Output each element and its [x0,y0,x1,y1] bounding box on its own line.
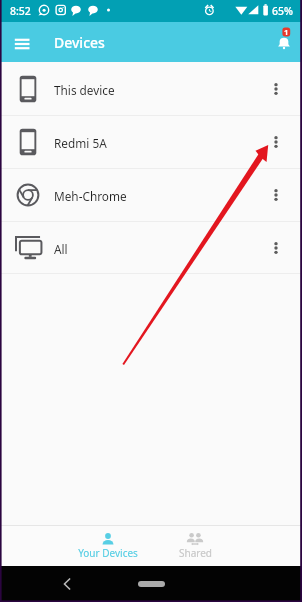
button[interactable]: Your Devices [64,526,152,566]
staticText: 8:52 [10,4,31,18]
button[interactable]: Notifications [258,22,302,62]
staticText: Your Devices [78,546,138,560]
staticText: Meh-Chrome [54,188,127,204]
staticText: Redmi 5A [54,135,107,151]
staticText: This device [54,82,115,98]
staticText: 65% [272,4,293,18]
staticText: 1 [284,27,289,37]
staticText: All [54,241,68,257]
staticText: Shared [179,546,212,560]
button[interactable]: Redmi 5A [0,116,302,168]
staticText: Devices [54,33,105,52]
button[interactable]: More options for Meh-Chrome [259,173,293,217]
button[interactable]: More options for Redmi 5A [259,120,293,164]
button[interactable]: More options for All [259,226,293,270]
button[interactable]: Open navigation menu [0,22,44,62]
button[interactable]: More options for This device [259,67,293,111]
button[interactable]: This device [0,62,302,115]
button[interactable]: Meh-Chrome [0,169,302,221]
button[interactable]: All [0,222,302,273]
button[interactable]: Shared [159,526,231,566]
